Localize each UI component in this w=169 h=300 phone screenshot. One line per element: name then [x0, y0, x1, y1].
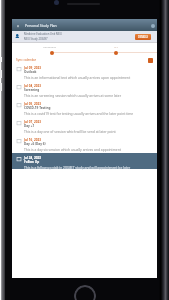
button[interactable]: Account — [148, 21, 157, 30]
staticText: Jul 05, 2023 — [24, 102, 42, 106]
staticText: This is an informational text which usua… — [24, 75, 131, 79]
staticText: Medicine Evaluation Unit MEU — [24, 32, 62, 36]
button[interactable]: Jul 05, 2023 — [12, 99, 157, 115]
button[interactable]: Menu — [12, 19, 157, 31]
staticText: Outlook — [24, 70, 37, 74]
staticText: Jul 16, 2023 — [24, 138, 42, 142]
staticText: Jul 09, 2023 — [24, 66, 42, 70]
staticText: This is a covid19 test for testing usual… — [24, 111, 134, 115]
staticText: Jul 04, 2023 — [24, 84, 42, 88]
button[interactable]: Jul 09, 2023 — [12, 63, 157, 79]
staticText: Screening — [24, 88, 40, 92]
button[interactable]: Upcoming — [50, 51, 54, 55]
staticText: This is a follow up visit in 203457 stud… — [24, 165, 131, 169]
staticText: This is an screening session which usual… — [24, 93, 121, 97]
button[interactable]: Jul 04, 2023 — [12, 81, 157, 97]
staticText: COVID-19 Testing — [24, 106, 51, 110]
staticText: Personal Study Plan — [25, 23, 57, 28]
staticText: This is a day six session which usually … — [24, 147, 121, 151]
button[interactable]: Jul 24, 2023 — [12, 153, 157, 169]
staticText: DETAILS — [138, 35, 148, 39]
staticText: Follow Up — [24, 160, 40, 164]
staticText: This is a day one of session which will … — [24, 129, 116, 133]
button[interactable]: DETAILS — [135, 34, 151, 40]
button[interactable]: Medicine Evaluation Unit MEU — [12, 31, 157, 42]
button[interactable]: Sync calendar — [12, 57, 157, 63]
staticText: MEU Study 203497 — [24, 37, 48, 41]
button[interactable]: All — [114, 51, 118, 55]
button[interactable]: Jul 16, 2023 — [12, 135, 157, 151]
staticText: Jul 07, 2023 — [24, 120, 42, 124]
staticText: Day +1 — [24, 124, 35, 128]
button[interactable]: Jul 07, 2023 — [12, 117, 157, 133]
staticText: ALL — [114, 45, 119, 48]
button[interactable]: Menu — [14, 22, 21, 29]
button[interactable]: Sync calendar — [148, 58, 153, 63]
staticText: UPCOMING — [43, 45, 57, 48]
staticText: Sync calendar — [16, 58, 37, 62]
staticText: Jul 24, 2023 — [24, 156, 42, 160]
staticText: Day +6 (Day 6) — [24, 142, 46, 146]
